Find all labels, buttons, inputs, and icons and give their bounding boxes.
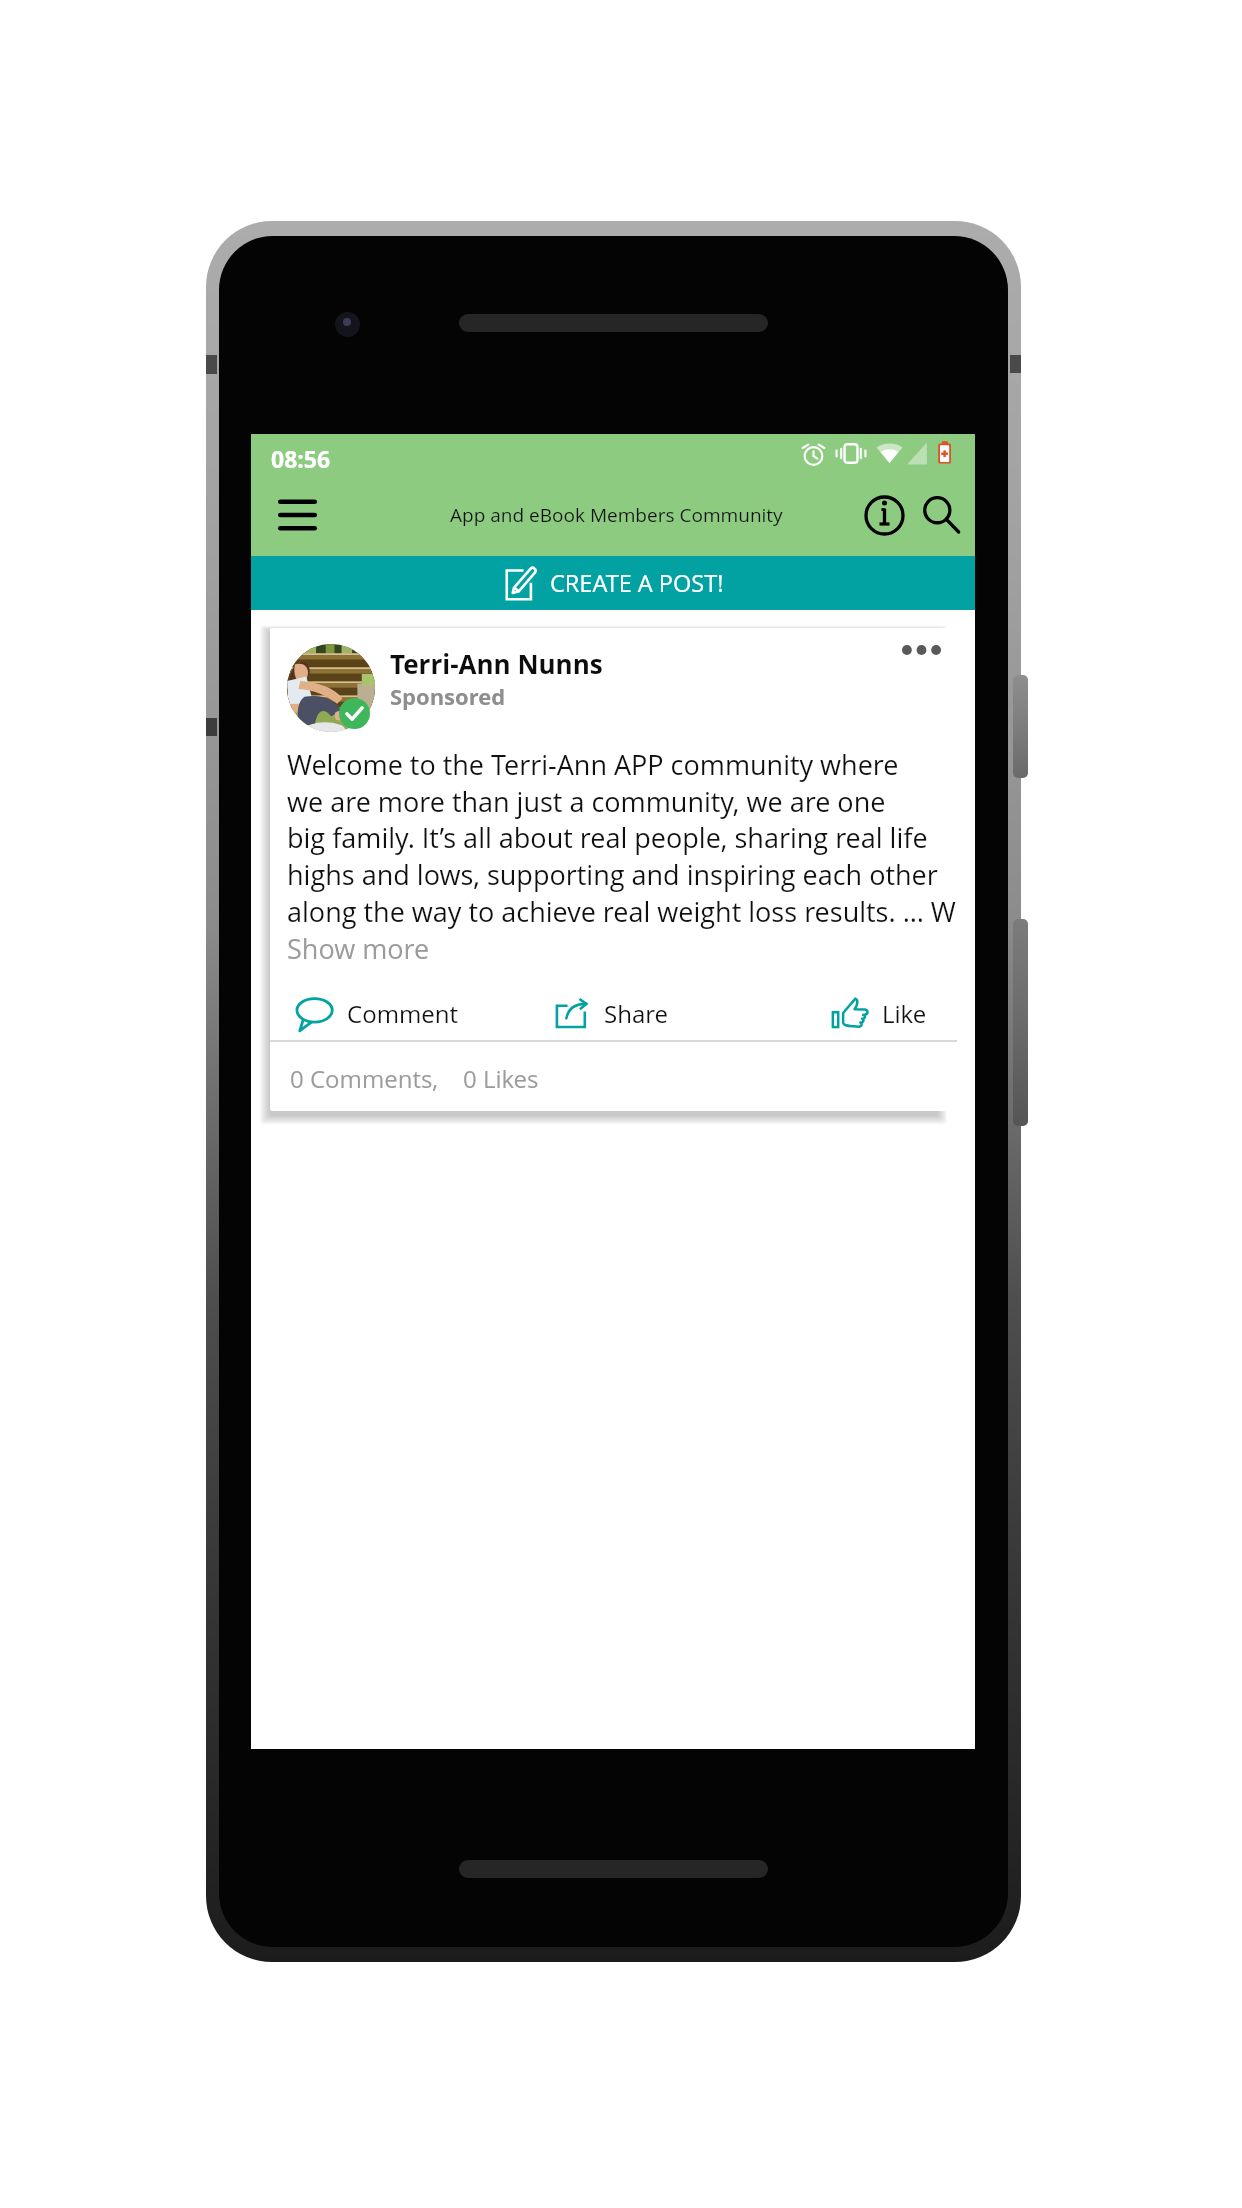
staticText: big family. It’s all about real people, … — [287, 819, 928, 856]
button[interactable]: Show more — [287, 930, 430, 967]
staticText: Welcome to the Terri-Ann APP community w… — [287, 746, 899, 783]
button[interactable]: Share — [552, 986, 669, 1040]
button[interactable]: Comment — [294, 986, 458, 1040]
staticText: highs and lows, supporting and inspiring… — [287, 856, 938, 893]
staticText: Sponsored — [390, 681, 506, 711]
staticText: Terri-Ann Nunns — [390, 646, 603, 681]
button[interactable]: CREATE A POST! — [251, 556, 975, 610]
staticText: Comment — [347, 997, 458, 1030]
staticText: we are more than just a community, we ar… — [287, 783, 886, 820]
staticText: Like — [882, 997, 927, 1030]
staticText: CREATE A POST! — [550, 567, 724, 599]
staticText: 0 Likes — [463, 1062, 539, 1095]
staticText: App and eBook Members Community — [450, 502, 783, 528]
staticText: 08:56 — [271, 443, 331, 474]
button[interactable]: More options — [890, 630, 950, 670]
button[interactable]: Search — [908, 478, 964, 556]
staticText: 0 Comments, — [290, 1062, 439, 1095]
button[interactable]: Open navigation menu — [261, 478, 323, 556]
staticText: along the way to achieve real weight los… — [287, 893, 956, 930]
staticText: Share — [604, 997, 669, 1030]
button[interactable]: Information — [853, 478, 911, 556]
button[interactable]: Like — [830, 986, 927, 1040]
